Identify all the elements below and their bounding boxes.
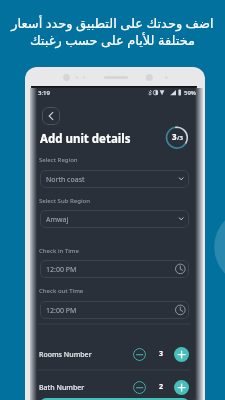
button[interactable]: Save unit [40,398,189,400]
staticText: Select Sub Region [39,197,90,205]
staticText: 3:19 [38,89,50,97]
button[interactable]: Select sub region [40,210,189,228]
button[interactable]: Increase Rooms Number [174,347,189,362]
button[interactable]: Decrease Bath Number [133,381,146,394]
staticText: 2 [159,382,164,392]
staticText: Check in Time [39,247,79,255]
staticText: 3 [172,131,177,142]
button[interactable]: Check out time [40,301,189,319]
button[interactable]: Back [42,107,60,125]
staticText: Check out Time [39,287,84,295]
staticText: 12:00 PM [46,265,77,275]
staticText: Amwaj [46,215,69,225]
staticText: Select Region [39,156,78,164]
button[interactable]: Decrease Rooms Number [133,348,146,361]
button[interactable]: Increase Bath Number [174,380,189,395]
staticText: مختلفة للأيام على حسب رغبتك [0,31,225,49]
staticText: Rooms Number [39,350,92,360]
staticText: Bath Number [39,383,85,393]
button[interactable]: Select region [40,170,189,188]
staticText: North coast [46,175,85,185]
staticText: /3 [177,134,183,142]
button[interactable]: Check in time [40,260,189,278]
staticText: Add unit details [40,131,131,147]
staticText: 59% [184,89,196,97]
staticText: 3 [159,349,164,359]
staticText: اضف وحدتك على التطبيق وحدد أسعار [0,14,225,32]
staticText: 12:00 PM [46,306,77,316]
